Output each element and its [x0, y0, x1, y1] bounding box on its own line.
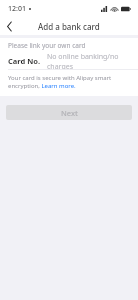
staticText: Add a bank card [38, 21, 100, 32]
staticText: Please link your own card [8, 41, 86, 50]
button[interactable]: Next [6, 105, 132, 120]
staticText: Card No. [8, 56, 41, 66]
button[interactable]: Back [0, 17, 18, 35]
staticText: Your card is secure with Alipay smart en… [8, 74, 130, 90]
button[interactable]: Card No. [0, 52, 138, 69]
staticText: 12:01 [8, 4, 26, 14]
staticText: No online banking/no charges [47, 52, 130, 69]
staticText: Next [61, 108, 78, 118]
